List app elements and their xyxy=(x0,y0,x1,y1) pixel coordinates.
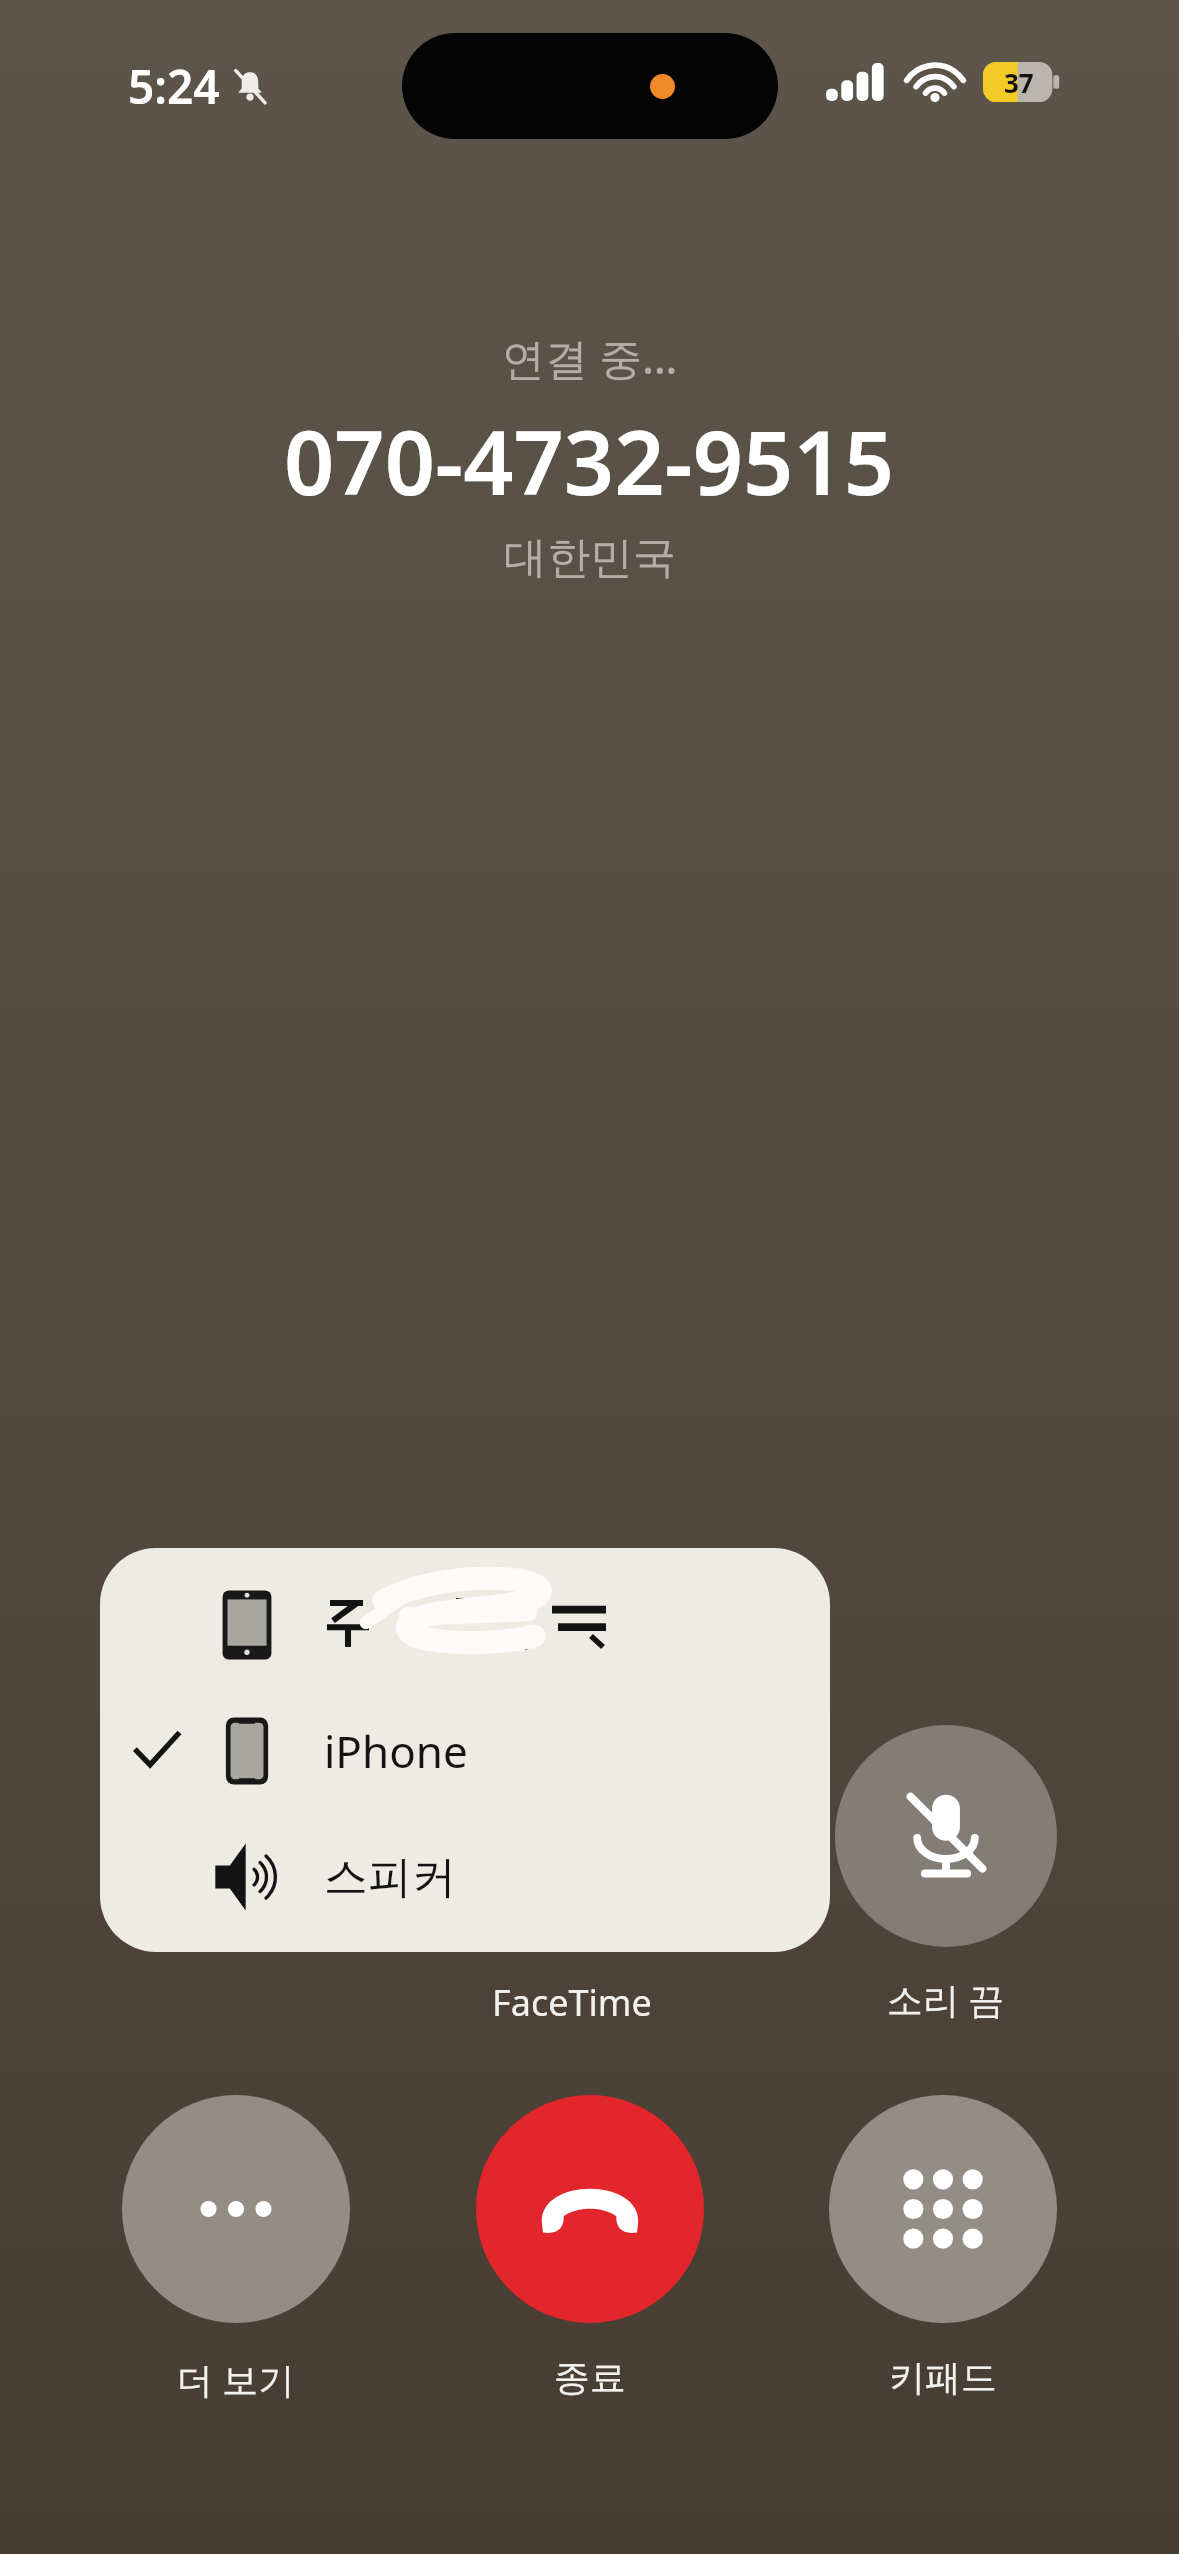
button[interactable]: 스피커 xyxy=(100,1814,830,1940)
staticText: 종료 xyxy=(554,2355,626,2400)
staticText: 더 보기 xyxy=(177,2355,295,2404)
button[interactable]: 더 보기 xyxy=(122,2095,350,2323)
button[interactable]: 키패드 xyxy=(829,2095,1057,2323)
button[interactable]: 종료 xyxy=(476,2095,704,2323)
staticText: 소리 끔 xyxy=(887,1975,1005,2024)
staticText: 키패드 xyxy=(889,2355,997,2400)
staticText: 070-4732-9515 xyxy=(284,401,895,521)
staticText: iPhone xyxy=(324,1721,468,1781)
staticText: 연결 중... xyxy=(502,328,678,387)
staticText: 스피커 xyxy=(324,1850,456,1905)
staticText: 대한민국 xyxy=(504,531,676,585)
staticText: 5:24 xyxy=(128,55,220,118)
staticText: 37 xyxy=(1004,65,1034,100)
button[interactable]: 소리 끔 xyxy=(835,1725,1057,1947)
button[interactable]: iPhone xyxy=(100,1688,830,1814)
button[interactable] xyxy=(100,1562,830,1688)
staticText: FaceTime xyxy=(492,1978,652,2027)
